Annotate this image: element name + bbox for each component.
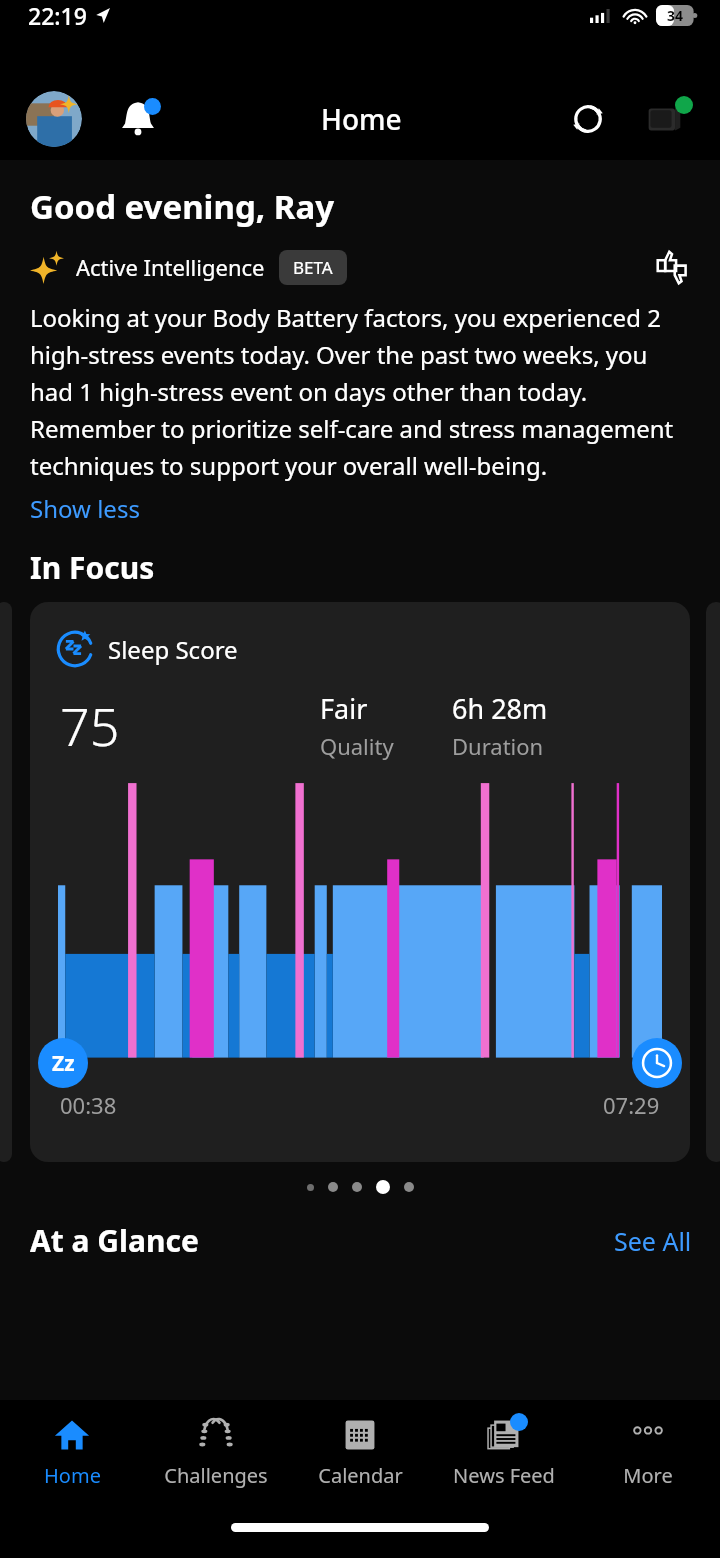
button[interactable]: Sleep Score	[30, 602, 690, 1162]
staticText: More	[623, 1462, 673, 1489]
staticText: Good evening, Ray	[30, 184, 335, 229]
button[interactable]: Wake time	[632, 1038, 682, 1088]
staticText: 07:29	[603, 1090, 660, 1120]
staticText: 22:19	[28, 0, 87, 31]
button[interactable]: See All	[614, 1224, 692, 1258]
staticText: Active Intelligence	[76, 252, 265, 282]
staticText: 6h 28m	[452, 690, 548, 727]
button[interactable]: Devices	[642, 93, 694, 145]
staticText: Home	[321, 100, 402, 138]
staticText: 34	[667, 6, 684, 25]
staticText: See All	[614, 1224, 692, 1258]
staticText: News Feed	[453, 1462, 555, 1489]
staticText: BETA	[293, 256, 333, 279]
button[interactable]: BETA	[279, 250, 347, 285]
staticText: Sleep Score	[108, 633, 238, 666]
staticText: Zz	[52, 1049, 75, 1078]
button[interactable]: Sync	[562, 93, 614, 145]
staticText: 75	[60, 690, 120, 761]
staticText: Challenges	[164, 1462, 268, 1489]
staticText: Looking at your Body Battery factors, yo…	[30, 301, 692, 482]
staticText: At a Glance	[30, 1220, 199, 1261]
staticText: 00:38	[60, 1090, 117, 1120]
staticText: Home	[44, 1462, 101, 1489]
button[interactable]: Home	[0, 1400, 144, 1508]
button[interactable]: Sleep start	[38, 1038, 88, 1088]
button[interactable]: News Feed	[432, 1400, 576, 1508]
staticText: Calendar	[318, 1462, 403, 1489]
button[interactable]: Challenges	[144, 1400, 288, 1508]
staticText: Show less	[30, 492, 140, 525]
staticText: Quality	[320, 731, 394, 761]
button[interactable]: Feedback	[650, 245, 694, 289]
staticText: Duration	[452, 731, 544, 761]
button[interactable]: Calendar	[288, 1400, 432, 1508]
button[interactable]: More	[576, 1400, 720, 1508]
staticText: Fair	[320, 690, 368, 727]
button[interactable]: Profile	[26, 91, 82, 147]
staticText: In Focus	[30, 547, 155, 588]
button[interactable]: Notifications	[114, 95, 162, 143]
button[interactable]: Show less	[30, 492, 140, 525]
